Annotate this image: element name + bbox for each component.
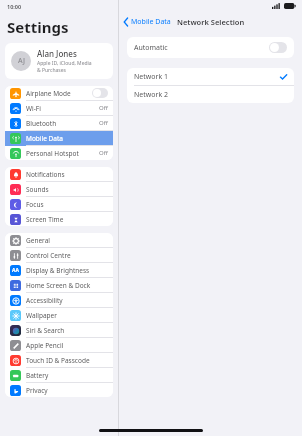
staticText: Network 2	[134, 90, 287, 100]
staticText: Off	[99, 104, 108, 112]
button[interactable]: Automatic toggle	[269, 42, 287, 53]
button[interactable]: Mobile Data	[5, 131, 113, 146]
button[interactable]: Siri & Search	[5, 323, 113, 338]
staticText: AJ	[18, 56, 25, 66]
staticText: Privacy	[26, 386, 108, 395]
button[interactable]: Airplane Mode toggle	[92, 88, 108, 98]
staticText: Touch ID & Passcode	[26, 356, 108, 365]
button[interactable]: AA	[5, 263, 113, 278]
button[interactable]: AJ	[5, 43, 113, 79]
button[interactable]: Airplane Mode	[5, 86, 113, 101]
button[interactable]: Mobile Data	[119, 14, 176, 30]
button[interactable]: Network 1	[127, 68, 294, 85]
staticText: Personal Hotspot	[26, 149, 99, 158]
button[interactable]: Accessibility	[5, 293, 113, 308]
button[interactable]: Sounds	[5, 182, 113, 197]
button[interactable]: Personal Hotspot	[5, 146, 113, 160]
staticText: Sounds	[26, 185, 108, 194]
staticText: Mobile Data	[131, 17, 171, 27]
staticText: Off	[99, 149, 108, 157]
staticText: 10:00	[7, 3, 22, 10]
button[interactable]: Control Centre	[5, 248, 113, 263]
staticText: AA	[12, 267, 19, 274]
staticText: Mobile Data	[26, 134, 108, 143]
staticText: Focus	[26, 200, 108, 209]
staticText: Wallpaper	[26, 311, 108, 320]
staticText: Airplane Mode	[26, 89, 92, 98]
button[interactable]: Notifications	[5, 167, 113, 182]
staticText: Off	[99, 119, 108, 127]
button[interactable]: Home Screen & Dock	[5, 278, 113, 293]
staticText: Accessibility	[26, 296, 108, 305]
staticText: Display & Brightness	[26, 266, 108, 275]
button[interactable]: Screen Time	[5, 212, 113, 226]
staticText: Settings	[7, 17, 69, 37]
staticText: Apple ID, iCloud, Media & Purchases	[37, 60, 92, 74]
button[interactable]: Privacy	[5, 383, 113, 397]
staticText: Battery	[26, 371, 108, 380]
staticText: General	[26, 236, 108, 245]
staticText: Notifications	[26, 170, 108, 179]
staticText: Automatic	[134, 43, 269, 53]
staticText: Bluetooth	[26, 119, 99, 128]
button[interactable]: Automatic	[127, 37, 294, 58]
staticText: Home Screen & Dock	[26, 281, 108, 290]
staticText: Siri & Search	[26, 326, 108, 335]
button[interactable]: Wallpaper	[5, 308, 113, 323]
button[interactable]: Battery	[5, 368, 113, 383]
button[interactable]: Network 2	[127, 86, 294, 103]
staticText: Apple Pencil	[26, 341, 108, 350]
staticText: Network 1	[134, 72, 280, 82]
button[interactable]: Bluetooth	[5, 116, 113, 131]
staticText: Screen Time	[26, 215, 108, 224]
button[interactable]: Focus	[5, 197, 113, 212]
button[interactable]: General	[5, 233, 113, 248]
button[interactable]: Touch ID & Passcode	[5, 353, 113, 368]
staticText: Alan Jones	[37, 48, 77, 59]
button[interactable]: Wi-Fi	[5, 101, 113, 116]
button[interactable]: Apple Pencil	[5, 338, 113, 353]
staticText: Control Centre	[26, 251, 108, 260]
staticText: Wi-Fi	[26, 104, 99, 113]
staticText: Network Selection	[177, 17, 245, 27]
